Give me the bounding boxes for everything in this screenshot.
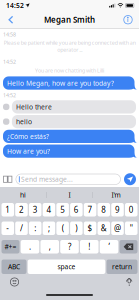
staticText: 1: [5, 204, 10, 215]
staticText: 8: [101, 204, 106, 215]
staticText: ,: [49, 241, 51, 252]
staticText: ": [130, 223, 133, 233]
staticText: -: [6, 223, 9, 233]
button[interactable]: &: [97, 221, 110, 235]
staticText: hello: [16, 117, 32, 126]
button[interactable]: 7: [84, 203, 96, 216]
button[interactable]: ): [70, 221, 83, 235]
staticText: 7: [88, 204, 93, 215]
staticText: return: [112, 262, 132, 271]
staticText: ’: [108, 241, 109, 252]
staticText: @: [114, 223, 121, 233]
staticText: Please be patient while you are being co…: [3, 39, 135, 53]
button[interactable]: ’: [100, 240, 118, 253]
staticText: 14:52: [3, 92, 16, 99]
staticText: (: [62, 223, 64, 233]
button[interactable]: 9: [111, 203, 124, 216]
staticText: 2: [19, 204, 24, 215]
staticText: 14:52: [3, 58, 16, 65]
button[interactable]: -: [1, 221, 14, 235]
staticText: ABC: [8, 262, 20, 271]
staticText: Hello there: [16, 102, 52, 111]
staticText: ): [75, 223, 77, 233]
staticText: #+=: [4, 242, 16, 251]
staticText: Hello Megan, how are you today?: [7, 79, 114, 87]
button[interactable]: /: [15, 221, 28, 235]
button[interactable]: 4: [43, 203, 55, 216]
staticText: 6: [74, 204, 79, 215]
staticText: !: [88, 241, 90, 252]
staticText: space: [57, 262, 75, 271]
button[interactable]: 1: [1, 203, 14, 216]
staticText: 14:58: [3, 31, 16, 38]
staticText: ;: [48, 223, 50, 233]
staticText: You are now chatting with Lilli: [35, 67, 104, 74]
button[interactable]: ": [125, 221, 137, 235]
button[interactable]: Delete: [119, 240, 137, 253]
staticText: 5: [60, 204, 65, 215]
staticText: ?: [68, 241, 71, 252]
staticText: .: [29, 241, 31, 252]
button[interactable]: 8: [97, 203, 110, 216]
staticText: $: [88, 223, 93, 233]
button[interactable]: Send: [124, 173, 136, 185]
button[interactable]: 2: [15, 203, 28, 216]
button[interactable]: return: [106, 259, 137, 274]
button[interactable]: ABC: [1, 259, 26, 274]
button[interactable]: ?: [60, 240, 79, 253]
button[interactable]: Dictation: [126, 277, 133, 287]
staticText: Send message...: [21, 175, 73, 184]
button[interactable]: I'm: [93, 187, 139, 203]
staticText: :: [34, 223, 36, 233]
button[interactable]: 5: [56, 203, 69, 216]
button[interactable]: #+=: [1, 240, 19, 253]
button[interactable]: Emoji: [10, 277, 19, 286]
button[interactable]: ;: [43, 221, 55, 235]
staticText: Megan Smith: [44, 14, 95, 25]
button[interactable]: @: [111, 221, 124, 235]
staticText: How are you?: [7, 147, 50, 156]
button[interactable]: !: [80, 240, 99, 253]
staticText: 14:52: [6, 1, 24, 10]
staticText: 9: [115, 204, 120, 215]
button[interactable]: 6: [70, 203, 83, 216]
button[interactable]: 3: [29, 203, 41, 216]
button[interactable]: $: [84, 221, 96, 235]
staticText: ¿Cómo estás?: [7, 132, 49, 141]
button[interactable]: 0: [125, 203, 137, 216]
button[interactable]: .: [21, 240, 39, 253]
staticText: /: [20, 223, 23, 233]
button[interactable]: Attach: [3, 175, 12, 183]
staticText: 3: [33, 204, 38, 215]
staticText: &: [101, 223, 107, 233]
button[interactable]: :: [29, 221, 41, 235]
staticText: I'm: [111, 191, 120, 199]
button[interactable]: Conversation details: [120, 11, 136, 28]
button[interactable]: hi: [0, 187, 46, 203]
button[interactable]: (: [56, 221, 69, 235]
button[interactable]: ,: [40, 240, 59, 253]
staticText: 0: [129, 204, 134, 215]
button[interactable]: Back: [3, 11, 19, 28]
staticText: 4: [46, 204, 51, 215]
button[interactable]: I: [46, 187, 92, 203]
staticText: I: [68, 191, 70, 199]
staticText: hi: [20, 191, 26, 199]
button[interactable]: space: [28, 259, 105, 274]
